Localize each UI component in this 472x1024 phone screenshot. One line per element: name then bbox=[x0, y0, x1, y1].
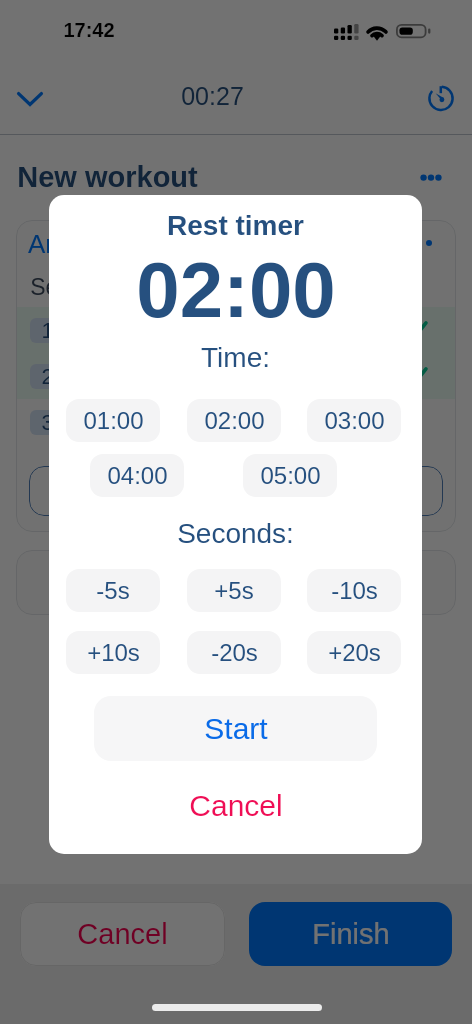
button[interactable]: 1 bbox=[30, 307, 429, 353]
staticText: 03:00 bbox=[324, 407, 385, 434]
staticText: Rest timer bbox=[167, 210, 304, 241]
staticText: Reps bbox=[324, 274, 378, 300]
staticText: kg bbox=[199, 274, 224, 300]
button[interactable]: 2 bbox=[30, 353, 429, 399]
staticText: 1 bbox=[41, 318, 54, 343]
staticText: Cancel bbox=[189, 789, 283, 823]
button[interactable]: -10s bbox=[307, 569, 401, 612]
button[interactable]: Collapse bbox=[8, 76, 52, 120]
staticText: 17:42 bbox=[63, 19, 115, 41]
staticText: Finish bbox=[312, 918, 390, 950]
staticText: -5s bbox=[96, 577, 130, 604]
staticText: Add set bbox=[197, 478, 275, 504]
staticText: +20s bbox=[328, 639, 381, 666]
staticText: 02:00 bbox=[204, 407, 265, 434]
staticText: +5s bbox=[214, 577, 254, 604]
staticText: 3 bbox=[41, 410, 54, 435]
staticText: 02:00 bbox=[136, 246, 336, 333]
button[interactable]: +20s bbox=[307, 631, 401, 674]
staticText: 00:27 bbox=[181, 82, 244, 110]
button[interactable]: 03:00 bbox=[307, 399, 401, 442]
button[interactable]: 05:00 bbox=[243, 454, 337, 497]
button[interactable]: +10s bbox=[66, 631, 160, 674]
button[interactable]: Rest timer bbox=[419, 76, 463, 120]
button[interactable]: Add set bbox=[29, 466, 443, 516]
button[interactable]: 02:00 bbox=[187, 399, 281, 442]
button[interactable]: 01:00 bbox=[66, 399, 160, 442]
staticText: -10s bbox=[331, 577, 378, 604]
button[interactable]: +5s bbox=[187, 569, 281, 612]
button[interactable]: -5s bbox=[66, 569, 160, 612]
staticText: 04:00 bbox=[107, 462, 168, 489]
button[interactable]: 04:00 bbox=[90, 454, 184, 497]
staticText: 05:00 bbox=[260, 462, 321, 489]
button[interactable]: -20s bbox=[187, 631, 281, 674]
button[interactable]: Start bbox=[94, 696, 377, 761]
staticText: 01:00 bbox=[83, 407, 144, 434]
staticText: Time: bbox=[201, 342, 270, 373]
staticText: Arnold press bbox=[28, 229, 174, 258]
button[interactable]: Finish bbox=[249, 902, 452, 966]
staticText: +10s bbox=[87, 639, 140, 666]
staticText: 2 bbox=[41, 364, 54, 389]
staticText: Seconds: bbox=[177, 518, 294, 549]
staticText: Start bbox=[204, 712, 268, 746]
staticText: New workout bbox=[17, 161, 198, 193]
button[interactable]: Cancel bbox=[20, 902, 225, 966]
staticText: Cancel bbox=[77, 918, 168, 950]
staticText: -20s bbox=[211, 639, 258, 666]
button[interactable]: More options bbox=[409, 155, 453, 199]
button[interactable]: 3 bbox=[30, 399, 429, 445]
button[interactable]: Cancel bbox=[136, 783, 336, 829]
staticText: Set bbox=[30, 274, 65, 300]
button[interactable] bbox=[16, 550, 456, 615]
